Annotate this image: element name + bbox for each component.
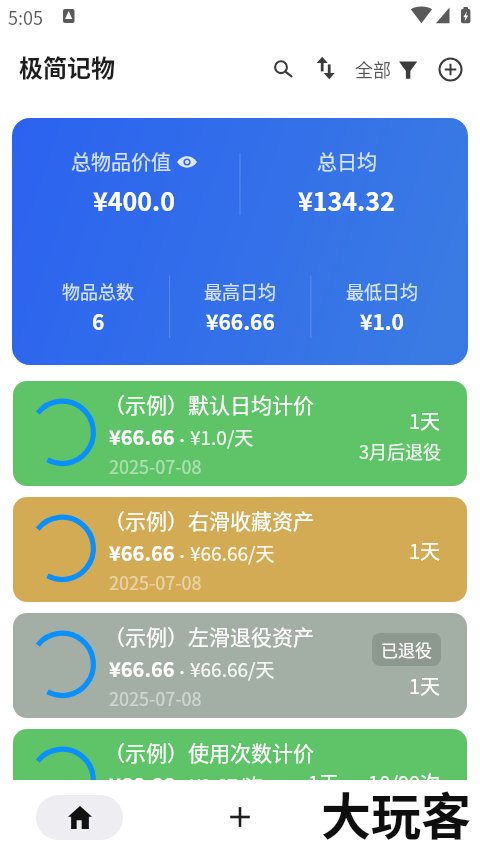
staticText: 1天 <box>409 671 441 700</box>
button[interactable]: Sort <box>313 54 339 80</box>
staticText: （示例）使用次数计价 <box>104 737 314 767</box>
staticText: 大玩客 <box>321 777 471 849</box>
staticText: 2025-07-08 <box>109 801 202 827</box>
staticText: 总日均 <box>317 147 377 176</box>
staticText: 已退役 <box>381 637 432 662</box>
staticText: 3月后退役 <box>359 438 441 464</box>
staticText: ¥66.66 <box>109 654 175 683</box>
staticText: ¥1.0/天 <box>190 423 254 451</box>
staticText: 1天 <box>409 406 441 435</box>
staticText: ¥66.66/天 <box>190 655 275 683</box>
staticText: （示例）左滑退役资产 <box>104 621 314 651</box>
staticText: 1天 <box>409 536 441 565</box>
staticText: 2025-07-08 <box>109 453 202 479</box>
staticText: 2025-07-08 <box>109 685 202 711</box>
button[interactable]: Search <box>268 55 296 83</box>
button[interactable]: 总物品价值 <box>12 118 468 365</box>
staticText: 最高日均 <box>204 278 276 304</box>
staticText: ¥1.0 <box>360 306 404 336</box>
staticText: 全部 <box>355 56 391 82</box>
staticText: 物品总数 <box>62 278 134 304</box>
staticText: ¥400.0 <box>93 182 175 218</box>
button[interactable]: （示例）使用次数计价 <box>13 729 467 834</box>
staticText: ¥0.67/次 <box>190 771 264 799</box>
staticText: ¥66.66 <box>206 306 275 336</box>
button[interactable]: （示例）默认日均计价 <box>13 381 467 486</box>
staticText: 2025-07-08 <box>109 569 202 595</box>
staticText: ¥66.66 <box>109 538 175 567</box>
button[interactable]: 全部 <box>355 53 418 85</box>
button[interactable]: Add <box>438 57 463 82</box>
button[interactable]: （示例）左滑退役资产 <box>13 613 467 718</box>
staticText: （示例）右滑收藏资产 <box>104 505 314 535</box>
button[interactable]: Add item <box>226 803 254 831</box>
staticText: 最低日均 <box>346 278 418 304</box>
staticText: ¥134.32 <box>298 182 395 218</box>
staticText: 1天 · 10/99次 <box>308 768 441 797</box>
staticText: 6 <box>92 306 105 336</box>
staticText: 极简记物 <box>19 49 115 84</box>
button[interactable]: （示例）右滑收藏资产 <box>13 497 467 602</box>
staticText: ¥66.66 <box>109 422 175 451</box>
staticText: ¥66.66 <box>109 770 175 799</box>
staticText: （示例）默认日均计价 <box>104 389 314 419</box>
button[interactable]: Home <box>36 795 123 840</box>
staticText: 5:05 <box>8 4 43 30</box>
staticText: ¥66.66/天 <box>190 539 275 567</box>
staticText: 总物品价值 <box>71 147 171 176</box>
